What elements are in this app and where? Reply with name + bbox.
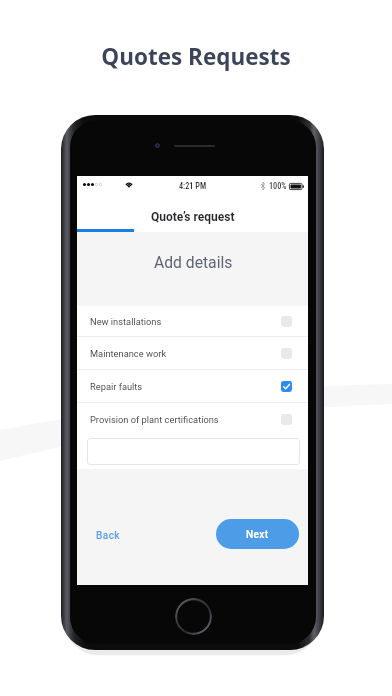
staticText: Quotes Requests <box>0 41 392 72</box>
button[interactable] <box>87 438 300 465</box>
staticText: Add details <box>154 253 233 271</box>
button[interactable]: Next <box>216 519 299 549</box>
button[interactable]: Back <box>89 525 127 547</box>
button[interactable]: Home <box>175 598 212 635</box>
button[interactable]: Maintenance work <box>77 337 308 370</box>
staticText: Next <box>246 529 269 541</box>
staticText: Repair faults <box>90 381 143 392</box>
staticText: 4:21 PM <box>179 181 207 191</box>
staticText: New installations <box>90 316 162 327</box>
button[interactable]: Repair faults <box>77 370 308 403</box>
staticText: Quote’s request <box>151 210 235 224</box>
staticText: Provision of plant certifications <box>90 414 219 425</box>
staticText: Back <box>96 530 120 542</box>
button[interactable]: Provision of plant certifications <box>77 403 308 436</box>
staticText: 100% <box>269 181 287 191</box>
staticText: Maintenance work <box>90 348 167 359</box>
button[interactable]: New installations <box>77 306 308 337</box>
